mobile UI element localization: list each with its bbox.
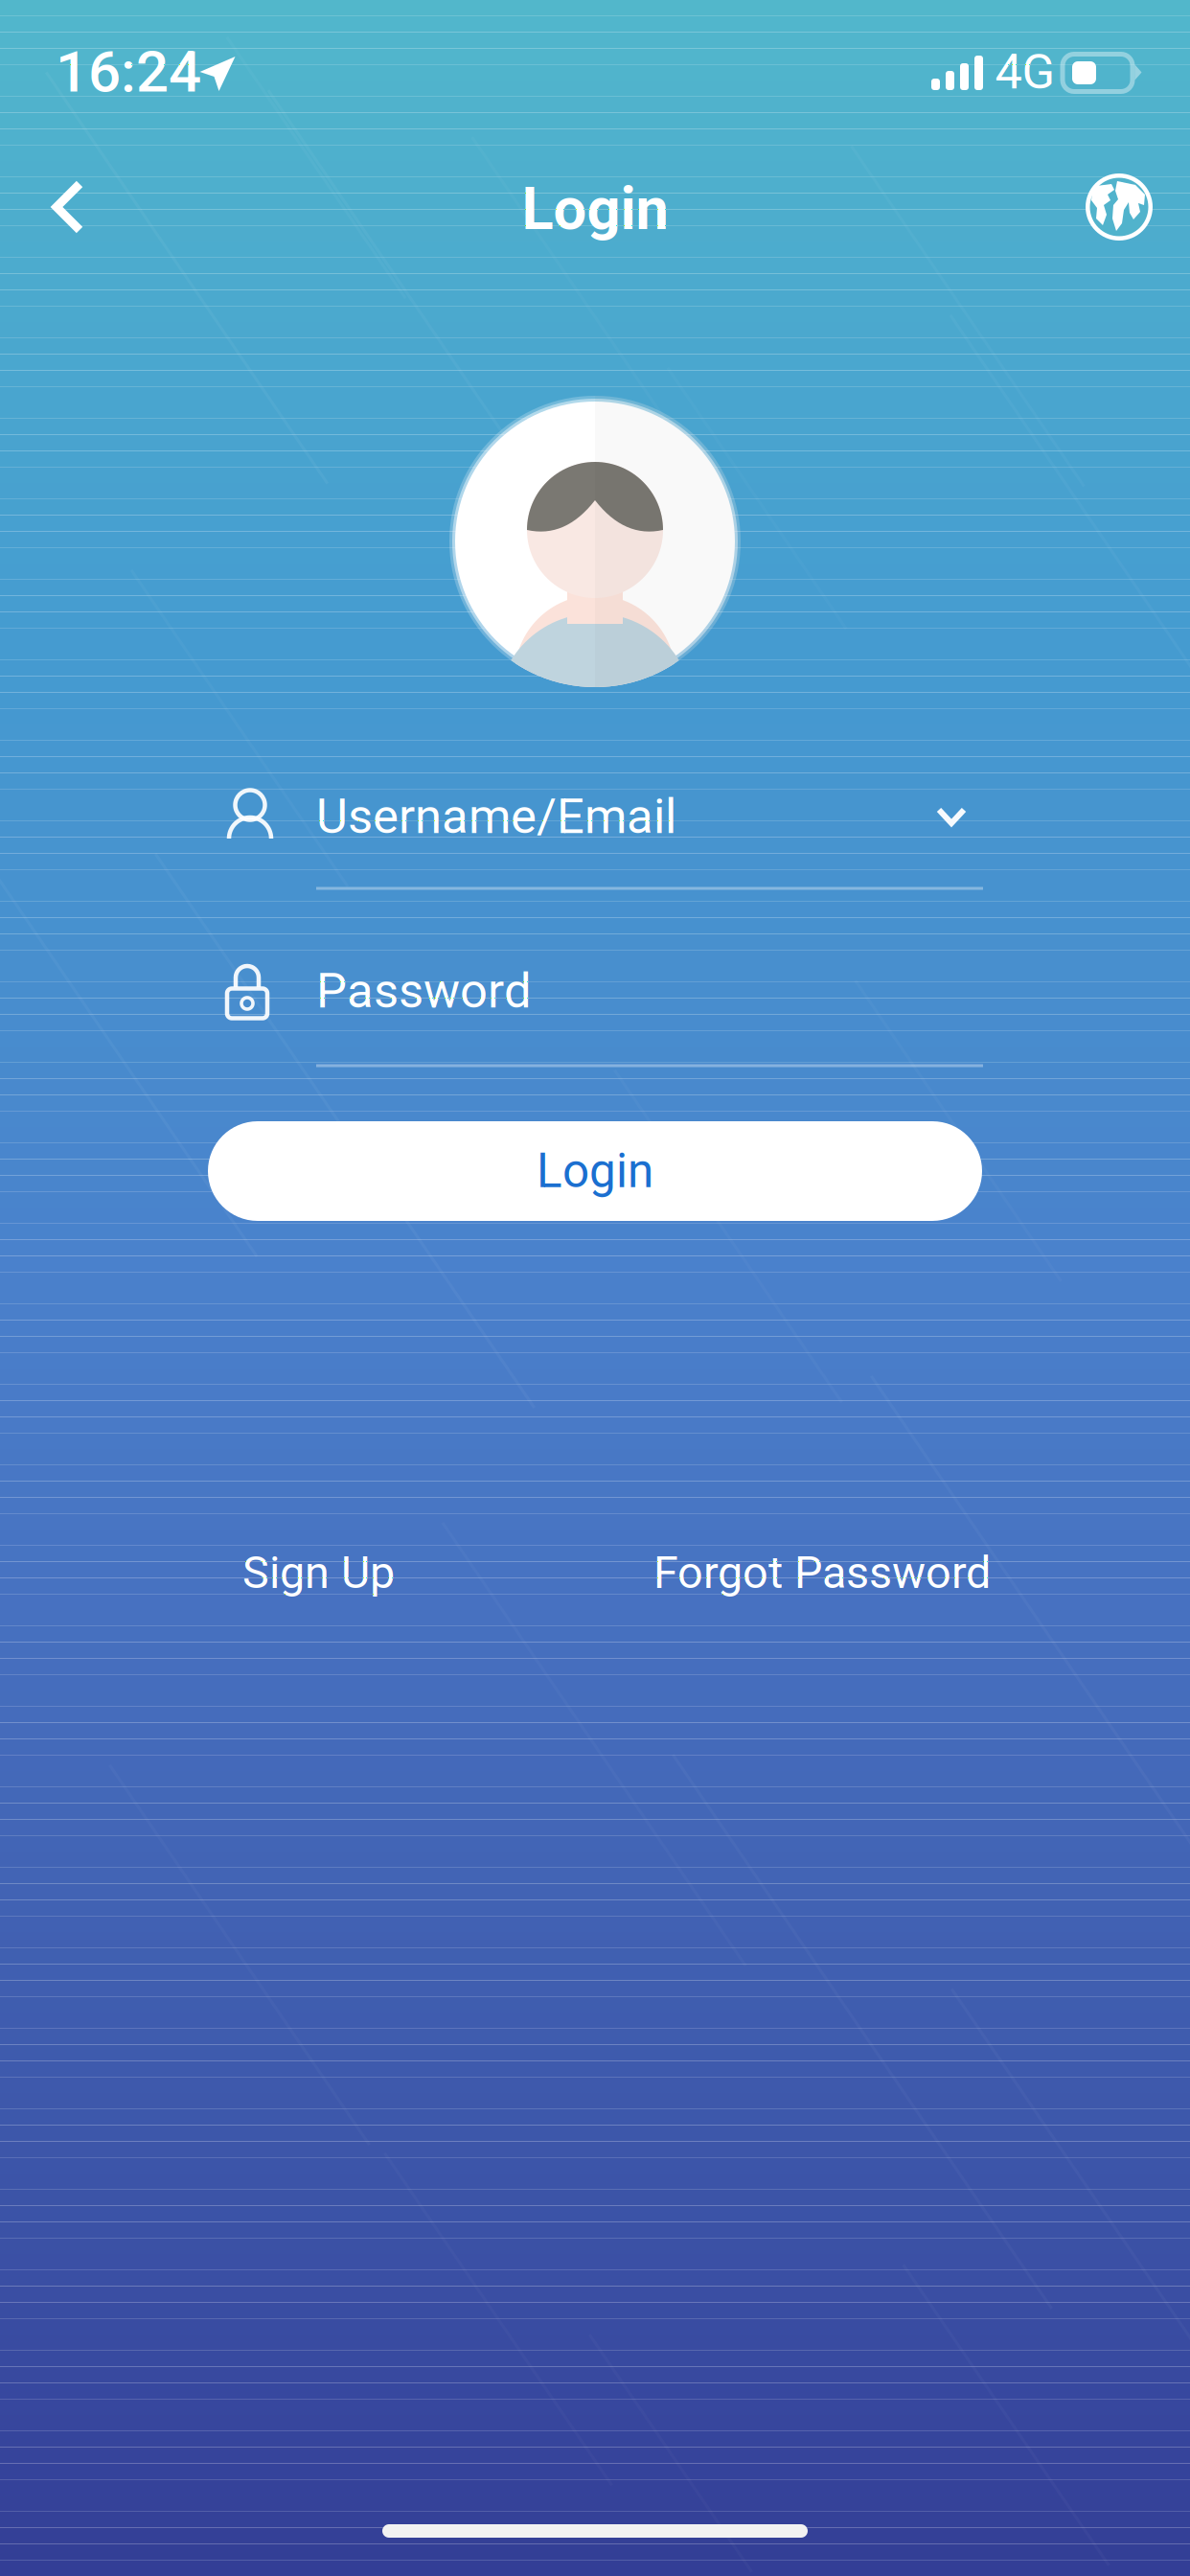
button[interactable]: Login <box>208 1121 982 1221</box>
button[interactable]: Back <box>12 151 124 263</box>
button[interactable]: Sign Up <box>242 1531 472 1614</box>
button[interactable]: Forgot Password <box>653 1531 1037 1614</box>
staticText: 16:24 <box>56 38 201 106</box>
staticText: 4G <box>995 43 1055 100</box>
staticText: Password <box>316 962 532 1019</box>
button[interactable]: Choose account <box>908 773 995 860</box>
staticText: Username/Email <box>316 788 676 845</box>
staticText: Login <box>537 1143 653 1199</box>
staticText: Forgot Password <box>653 1546 991 1599</box>
staticText: Login <box>522 175 668 243</box>
button[interactable]: Language <box>1064 151 1175 263</box>
staticText: Sign Up <box>242 1546 395 1599</box>
